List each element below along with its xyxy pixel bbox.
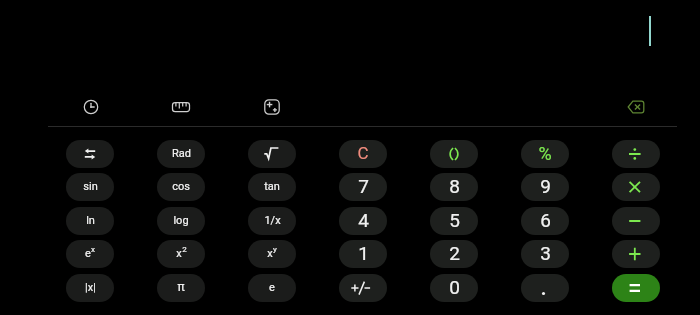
button[interactable]: 7: [339, 173, 387, 201]
button[interactable]: sin: [66, 173, 114, 201]
button[interactable]: Add: [612, 240, 660, 268]
button[interactable]: e to the power x: [66, 240, 114, 268]
button[interactable]: Subtract: [612, 207, 660, 235]
button[interactable]: Divide: [612, 140, 660, 168]
button[interactable]: 2: [430, 240, 478, 268]
staticText: log: [173, 214, 189, 227]
button[interactable]: log: [157, 207, 205, 235]
button[interactable]: Clear: [339, 140, 387, 168]
staticText: cos: [172, 180, 190, 193]
button[interactable]: 4: [339, 207, 387, 235]
staticText: e: [269, 281, 275, 294]
button[interactable]: Backspace: [624, 95, 648, 119]
button[interactable]: Equals: [612, 274, 660, 302]
staticText: tan: [264, 180, 280, 193]
button[interactable]: Scientific mode: [260, 95, 284, 119]
button[interactable]: 1: [339, 240, 387, 268]
staticText: %: [538, 143, 552, 164]
button[interactable]: Unit converter: [169, 95, 193, 119]
staticText: sin: [83, 180, 98, 193]
button[interactable]: Rad: [157, 140, 205, 168]
staticText: C: [357, 143, 369, 163]
button[interactable]: Square root: [248, 140, 296, 168]
staticText: 6: [540, 209, 551, 231]
staticText: 9: [540, 175, 551, 197]
staticText: 2: [449, 242, 460, 264]
staticText: |x|: [85, 281, 96, 294]
button[interactable]: tan: [248, 173, 296, 201]
button[interactable]: 8: [430, 173, 478, 201]
staticText: 8: [449, 175, 460, 197]
button[interactable]: Multiply: [612, 173, 660, 201]
staticText: 1: [358, 242, 369, 264]
staticText: π: [177, 280, 185, 294]
button[interactable]: cos: [157, 173, 205, 201]
button[interactable]: ln: [66, 207, 114, 235]
staticText: x: [267, 247, 273, 260]
button[interactable]: Euler's number: [248, 274, 296, 302]
button[interactable]: Absolute value: [66, 274, 114, 302]
button[interactable]: 0: [430, 274, 478, 302]
staticText: 2: [182, 245, 187, 254]
staticText: Rad: [172, 147, 191, 160]
button[interactable]: 3: [521, 240, 569, 268]
button[interactable]: Percent: [521, 140, 569, 168]
staticText: 1/x: [264, 214, 281, 227]
staticText: 3: [540, 242, 551, 264]
staticText: 7: [358, 175, 369, 197]
staticText: 4: [358, 209, 369, 231]
button[interactable]: x to the power y: [248, 240, 296, 268]
staticText: e: [85, 247, 91, 260]
staticText: x: [176, 247, 182, 260]
button[interactable]: Decimal point: [521, 274, 569, 302]
button[interactable]: x squared: [157, 240, 205, 268]
button[interactable]: 9: [521, 173, 569, 201]
button[interactable]: Plus minus: [339, 274, 387, 302]
button[interactable]: 1/x: [248, 207, 296, 235]
button[interactable]: Parentheses: [430, 140, 478, 168]
button[interactable]: History: [79, 95, 103, 119]
button[interactable]: 6: [521, 207, 569, 235]
staticText: y: [273, 245, 277, 254]
button[interactable]: Pi: [157, 274, 205, 302]
staticText: 0: [449, 276, 460, 298]
staticText: ln: [86, 214, 95, 227]
staticText: 5: [449, 209, 460, 231]
button[interactable]: 5: [430, 207, 478, 235]
button[interactable]: Swap units: [66, 140, 114, 168]
staticText: x: [91, 245, 95, 254]
